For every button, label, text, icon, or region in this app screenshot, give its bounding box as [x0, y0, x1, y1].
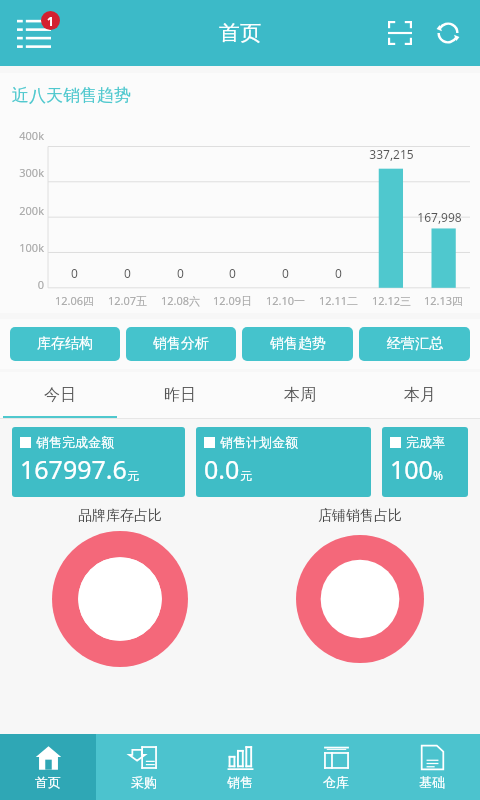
staticText: 采购	[131, 774, 157, 790]
staticText: 100	[390, 452, 433, 486]
button[interactable]: 销售趋势	[242, 327, 353, 361]
staticText: 经营汇总	[387, 335, 443, 353]
button[interactable]: 本月	[360, 372, 480, 418]
button[interactable]: 经营汇总	[359, 327, 470, 361]
button[interactable]: 昨日	[120, 372, 240, 418]
staticText: 0	[206, 265, 259, 281]
staticText: 品牌库存占比	[78, 507, 162, 525]
button[interactable]: 完成率	[382, 427, 468, 497]
staticText: 12.08六	[154, 293, 207, 308]
staticText: 12.09日	[206, 293, 259, 308]
staticText: 0	[312, 265, 365, 281]
staticText: 0	[48, 265, 101, 281]
button[interactable]: 销售计划金额	[196, 427, 371, 497]
staticText: 167,998	[397, 209, 480, 225]
staticText: 仓库	[323, 774, 349, 790]
staticText: 首页	[219, 20, 261, 46]
staticText: 元	[240, 468, 252, 483]
staticText: 近八天销售趋势	[12, 85, 131, 106]
button[interactable]: Refresh	[424, 9, 472, 57]
staticText: 0	[4, 277, 44, 292]
staticText: 首页	[35, 774, 61, 790]
staticText: 店铺销售占比	[318, 507, 402, 525]
staticText: 100k	[4, 240, 44, 255]
staticText: 本周	[284, 385, 316, 405]
staticText: 销售计划金额	[220, 434, 298, 450]
staticText: %	[433, 467, 443, 483]
staticText: 今日	[44, 385, 76, 405]
staticText: 400k	[4, 128, 44, 143]
button[interactable]: 库存结构	[10, 327, 120, 361]
button[interactable]: Scan	[376, 9, 424, 57]
staticText: 完成率	[406, 434, 445, 450]
staticText: 12.11二	[312, 293, 365, 308]
staticText: 0	[259, 265, 312, 281]
staticText: 0	[154, 265, 207, 281]
staticText: 销售	[227, 774, 253, 790]
staticText: 12.06四	[48, 293, 101, 308]
button[interactable]: 销售	[192, 734, 288, 800]
staticText: 昨日	[164, 385, 196, 405]
staticText: 销售完成金额	[36, 434, 114, 450]
staticText: 12.13四	[417, 293, 470, 308]
staticText: 12.07五	[101, 293, 154, 308]
staticText: 库存结构	[37, 335, 93, 353]
button[interactable]: 仓库	[288, 734, 384, 800]
button[interactable]: 采购	[96, 734, 192, 800]
staticText: 12.12三	[365, 293, 418, 308]
button[interactable]: 今日	[0, 372, 120, 418]
staticText: 300k	[4, 165, 44, 180]
button[interactable]: Menu	[6, 5, 62, 61]
button[interactable]: 销售分析	[126, 327, 236, 361]
staticText: 1	[47, 13, 54, 29]
button[interactable]: 基础	[384, 734, 480, 800]
staticText: 200k	[4, 203, 44, 218]
staticText: 0.0	[204, 452, 240, 486]
staticText: 0	[101, 265, 154, 281]
staticText: 销售趋势	[270, 335, 326, 353]
button[interactable]: 首页	[0, 734, 96, 800]
button[interactable]: 销售完成金额	[12, 427, 185, 497]
staticText: 337,215	[349, 146, 434, 162]
staticText: 基础	[419, 774, 445, 790]
staticText: 元	[127, 468, 139, 483]
staticText: 本月	[404, 385, 436, 405]
staticText: 12.10一	[259, 293, 312, 308]
staticText: 销售分析	[153, 335, 209, 353]
button[interactable]: 本周	[240, 372, 360, 418]
staticText: 167997.6	[20, 452, 127, 486]
